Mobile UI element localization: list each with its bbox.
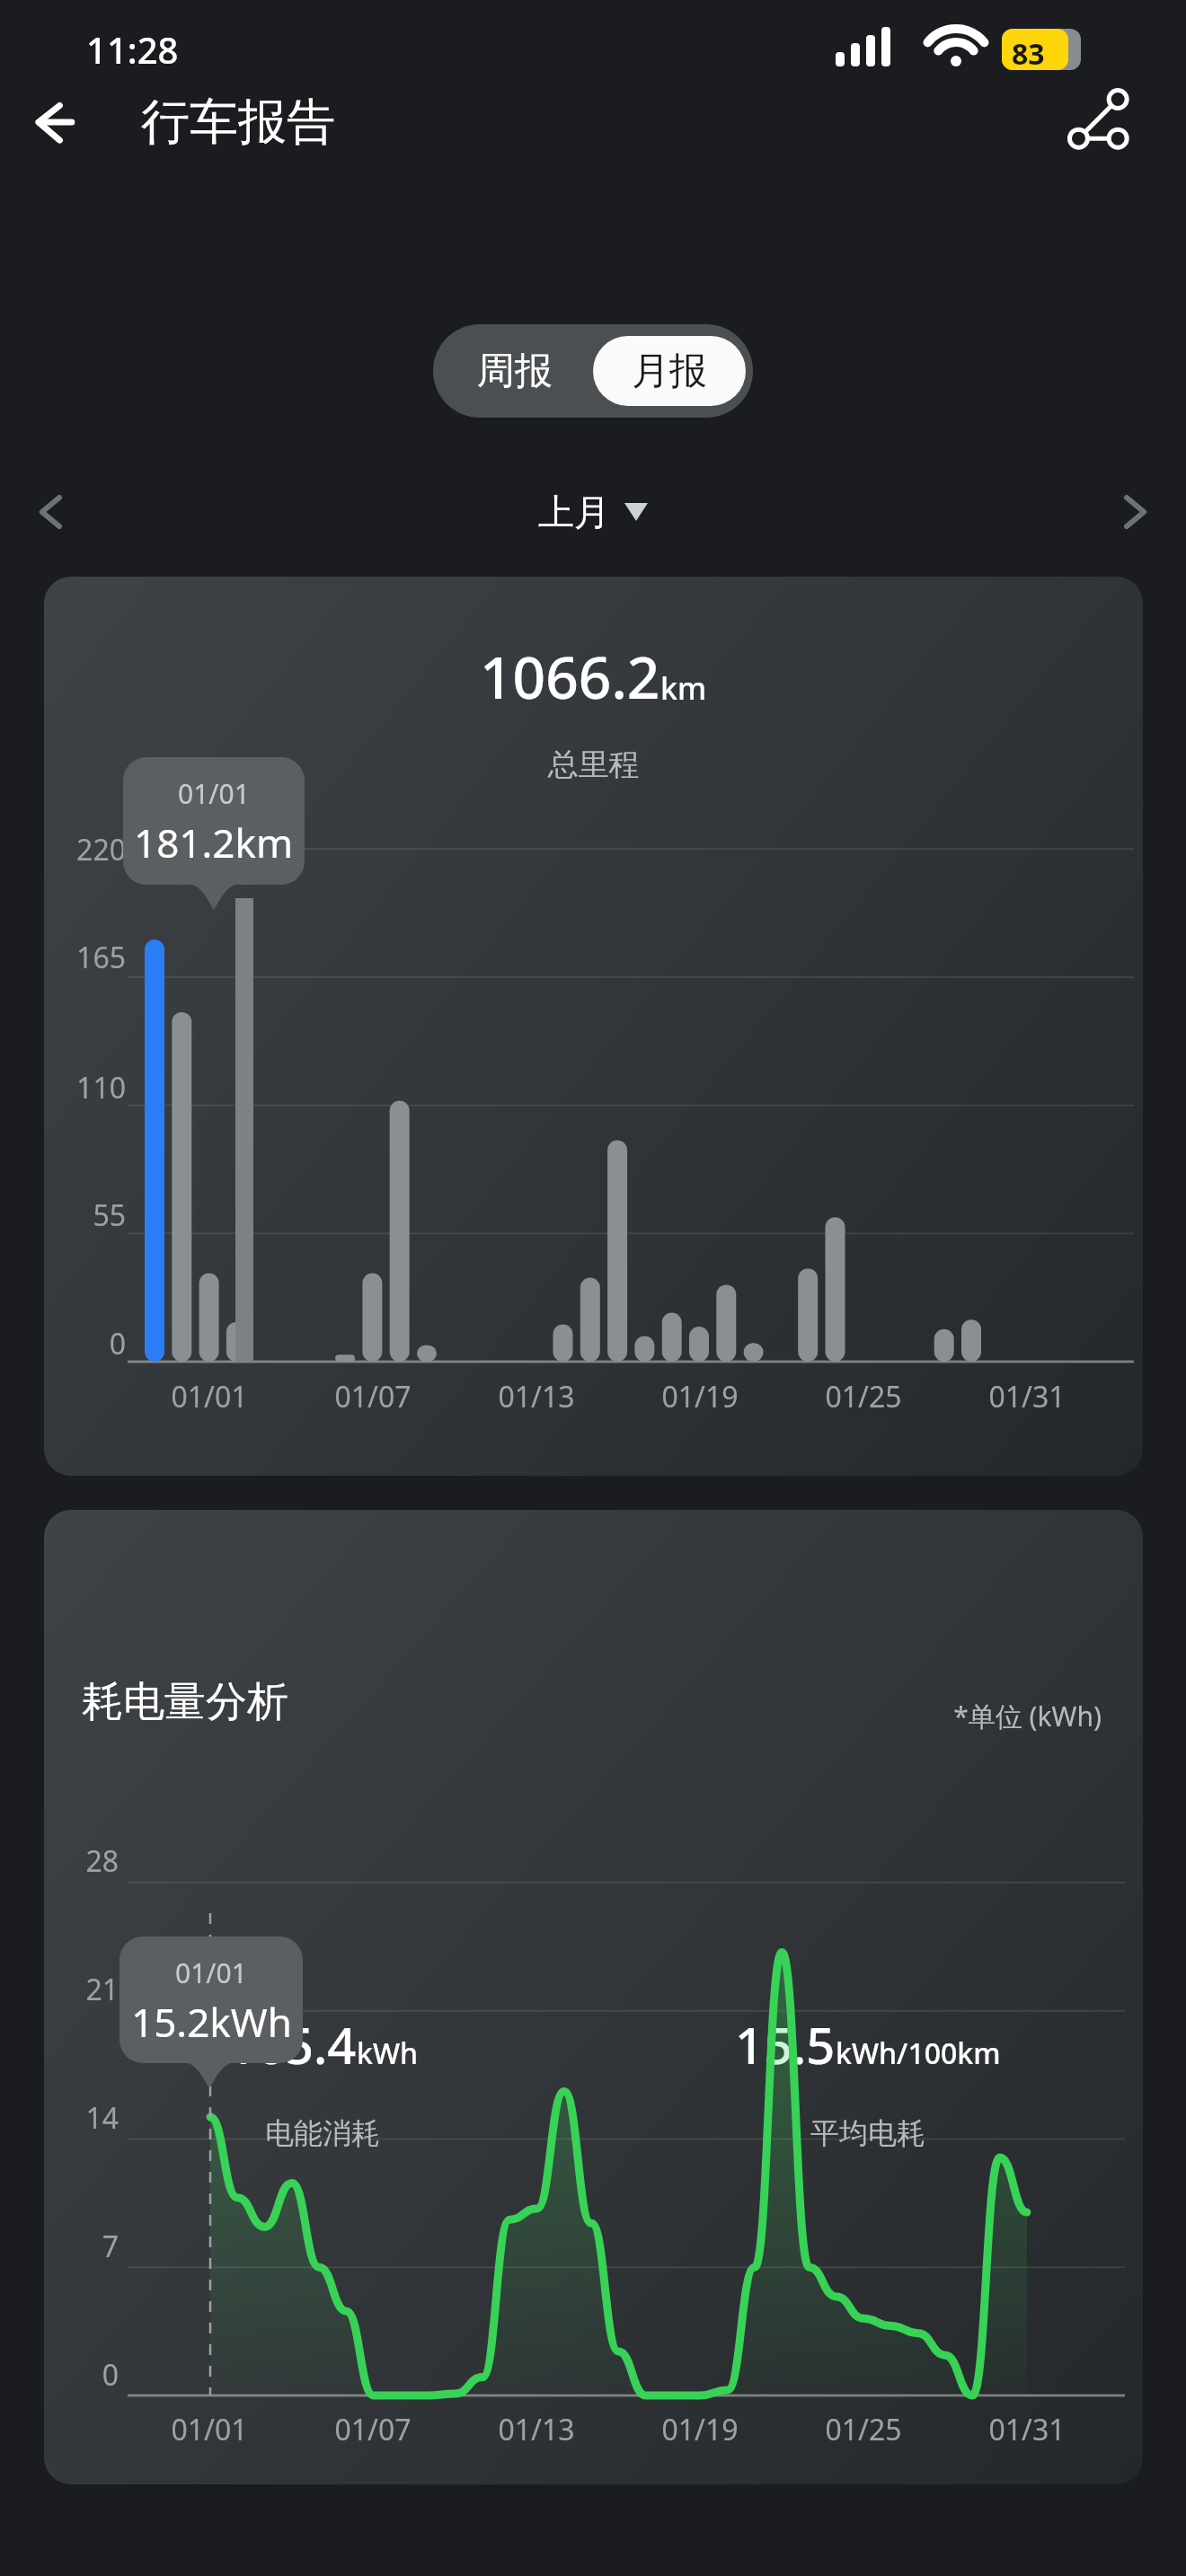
staticText: 01/01	[175, 1954, 247, 1991]
staticText: 上月	[538, 490, 610, 534]
staticText: 11:28	[86, 25, 179, 74]
staticText: *单位 (kWh)	[925, 1698, 1102, 1734]
button[interactable]	[44, 577, 1143, 1476]
staticText: 0	[47, 1324, 126, 1363]
staticText: km	[660, 667, 707, 709]
staticText: 耗电量分析	[82, 1676, 288, 1728]
staticText: 01/01	[178, 775, 250, 812]
staticText: 0	[47, 2355, 119, 2395]
staticText: 181.2km	[134, 816, 294, 869]
staticText: 01/07	[310, 1377, 436, 1416]
staticText: 行车报告	[141, 92, 335, 153]
staticText: 01/25	[801, 1377, 926, 1416]
button[interactable]: 月报	[593, 336, 746, 406]
staticText: 83	[1012, 34, 1045, 74]
staticText: 15.5	[735, 2010, 836, 2078]
staticText: 15.2kWh	[131, 1995, 292, 2049]
staticText: 周报	[477, 348, 553, 395]
button[interactable]	[44, 1510, 1143, 2484]
staticText: 01/13	[474, 1377, 599, 1416]
staticText: 01/31	[964, 1377, 1090, 1416]
button[interactable]: Back	[14, 84, 90, 160]
staticText: kWh/100km	[836, 2033, 1001, 2073]
staticText: 7	[47, 2227, 119, 2266]
staticText: 01/25	[801, 2410, 926, 2449]
staticText: 28	[47, 1841, 119, 1881]
staticText: 01/07	[310, 2410, 436, 2449]
button[interactable]: 周报	[435, 324, 595, 418]
staticText: 总里程	[44, 745, 1143, 784]
staticText: 01/13	[474, 2410, 599, 2449]
staticText: 平均电耗	[593, 2115, 1143, 2151]
staticText: 1066.2	[480, 638, 660, 716]
staticText: 01/19	[637, 1377, 763, 1416]
button[interactable]: Previous period	[16, 476, 88, 548]
staticText: 01/19	[637, 2410, 763, 2449]
staticText: 电能消耗	[44, 2115, 601, 2151]
staticText: 01/31	[964, 2410, 1090, 2449]
staticText: 14	[47, 2098, 119, 2138]
staticText: 55	[47, 1195, 126, 1235]
staticText: 110	[47, 1068, 126, 1107]
staticText: 01/01	[146, 2410, 272, 2449]
button[interactable]: 上月	[485, 483, 701, 541]
staticText: 165	[47, 938, 126, 977]
staticText: 165.4	[227, 2010, 357, 2078]
button[interactable]: Share	[1062, 83, 1137, 158]
staticText: 220	[47, 830, 126, 869]
staticText: kWh	[357, 2033, 419, 2073]
staticText: 01/01	[146, 1377, 272, 1416]
staticText: 21	[47, 1970, 119, 2009]
button[interactable]: Next period	[1098, 476, 1170, 548]
staticText: 月报	[632, 348, 707, 395]
